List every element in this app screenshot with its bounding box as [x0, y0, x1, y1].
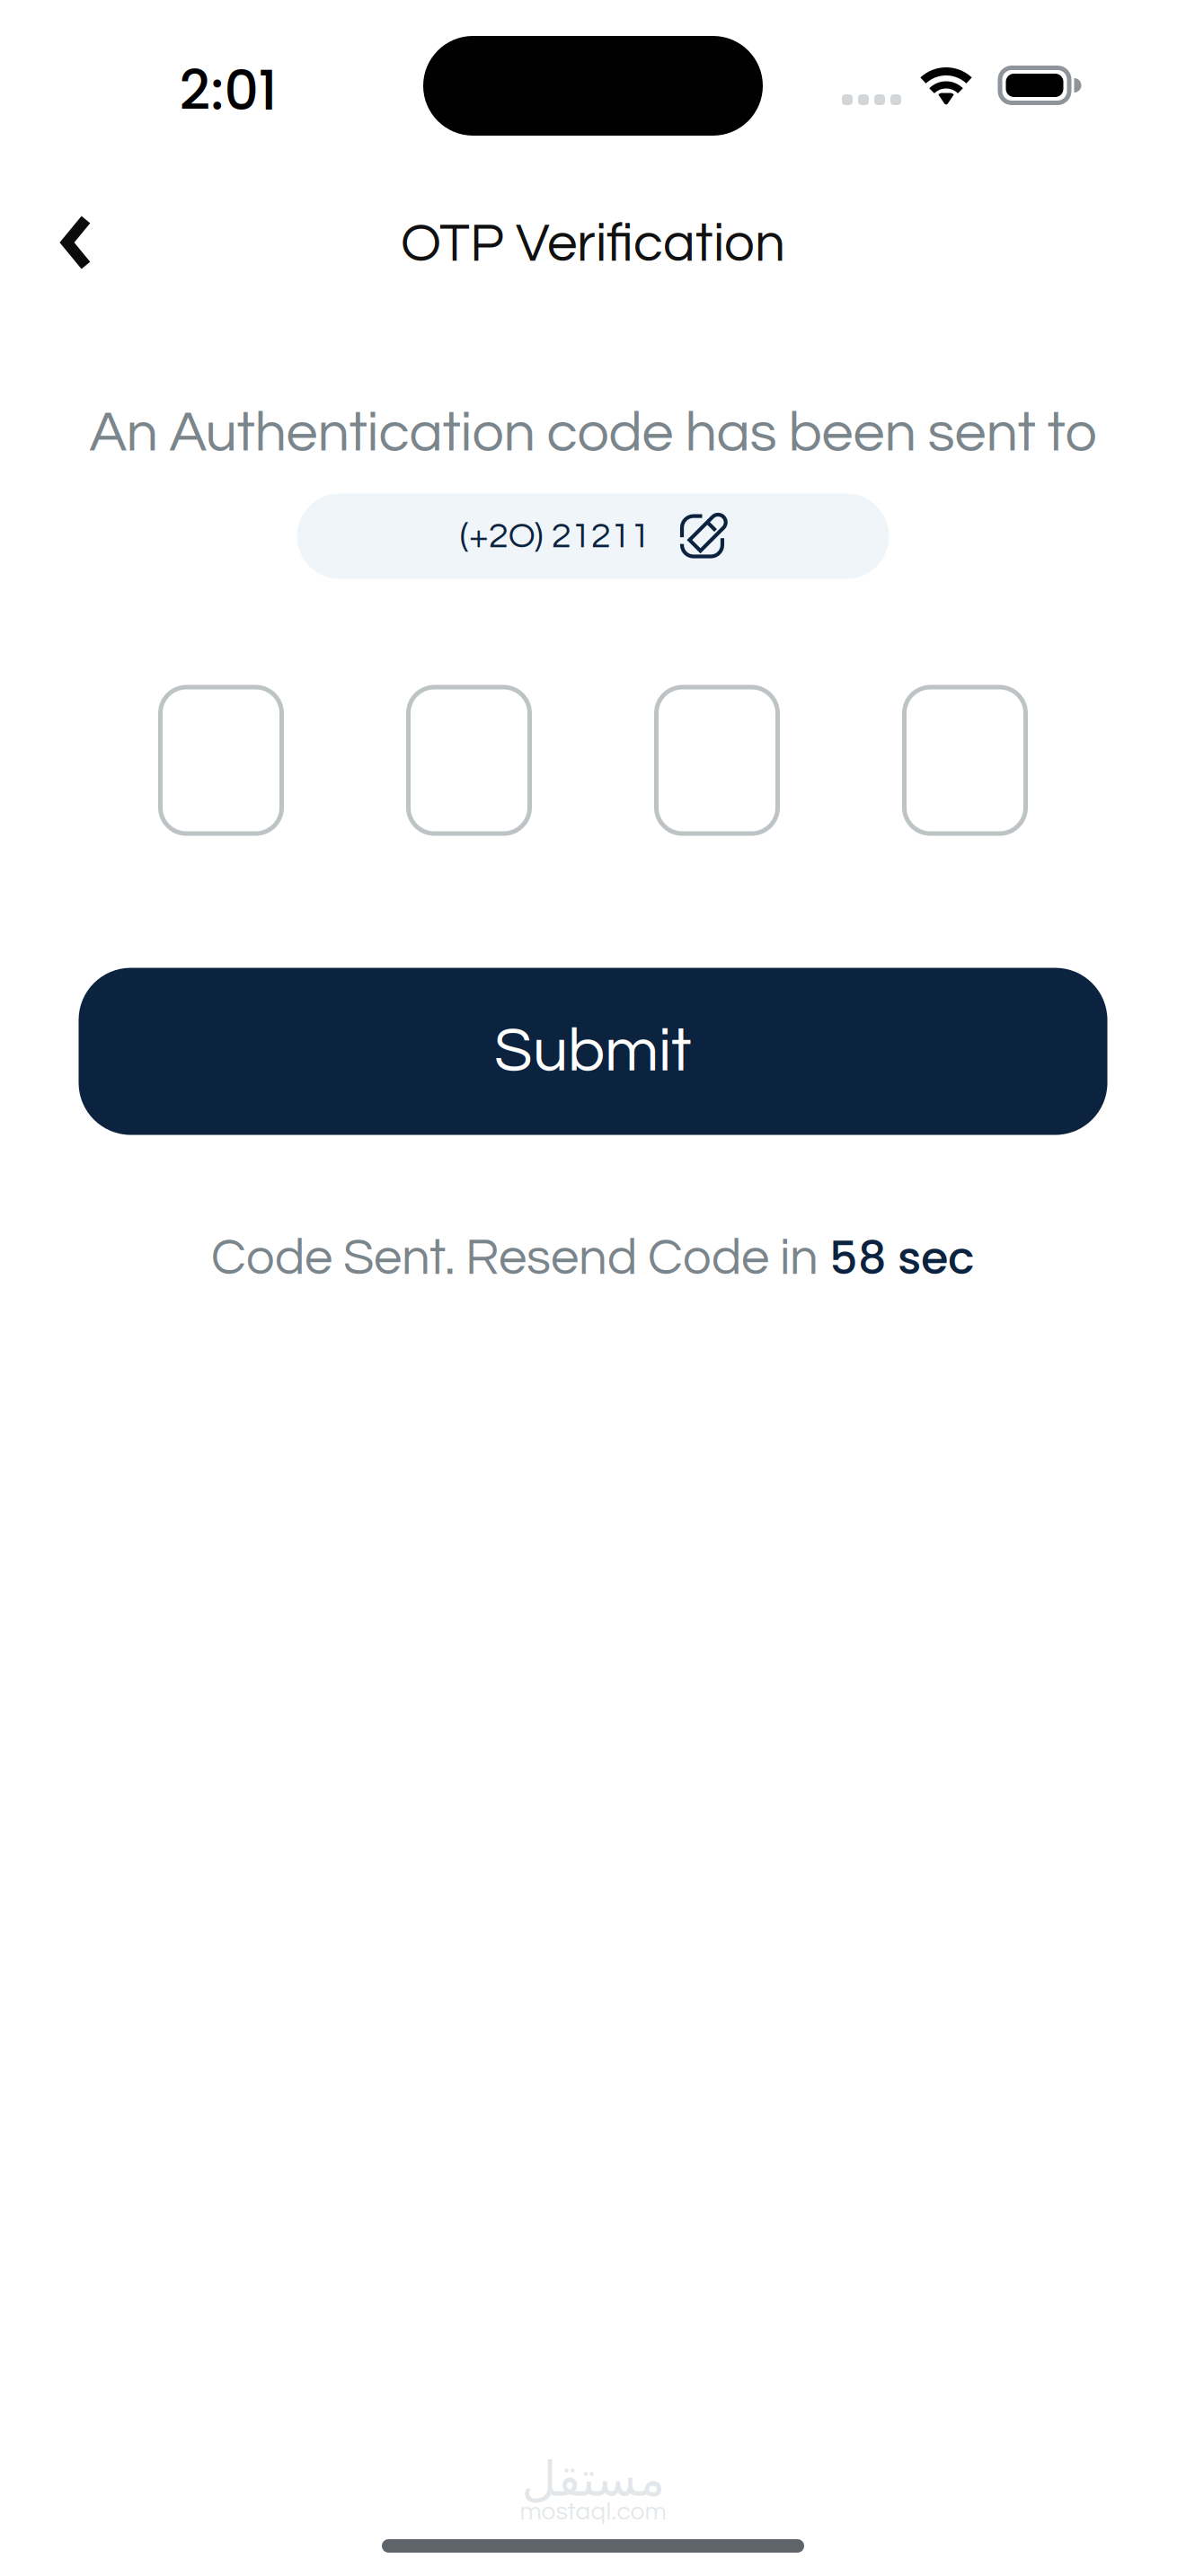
staticText: Submit [494, 1019, 692, 1083]
button[interactable]: Submit [79, 968, 1107, 1135]
staticText: 58 sec [829, 1227, 975, 1289]
button[interactable]: Back [0, 172, 122, 282]
staticText: OTP Verification [401, 217, 785, 272]
staticText: 2:01 [179, 53, 277, 128]
button[interactable]: (+2O) 21211 [297, 494, 889, 579]
button[interactable]: Code Sent. Resend Code in [211, 1227, 975, 1289]
staticText: مستقل [521, 2451, 665, 2507]
staticText: An Authentication code has been sent to [89, 404, 1097, 462]
staticText: Code Sent. Resend Code in [211, 1233, 829, 1284]
staticText: mostaql.com [520, 2499, 666, 2525]
staticText: (+2O) 21211 [460, 518, 650, 555]
